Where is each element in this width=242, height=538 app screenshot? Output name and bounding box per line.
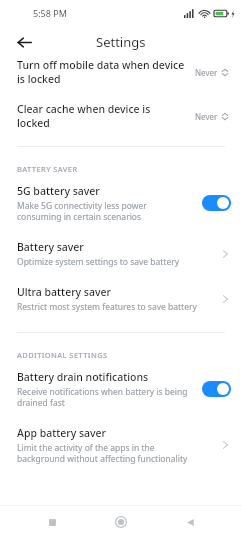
staticText: Limit the activity of the apps in the ba… (17, 442, 188, 464)
button[interactable]: Home (104, 506, 138, 538)
button[interactable]: Back (10, 28, 38, 56)
button[interactable]: Battery saver (0, 222, 242, 268)
staticText: BATTERY SAVER (17, 164, 78, 174)
button[interactable]: Battery drain notifications (0, 360, 242, 408)
staticText: Battery drain notifications (17, 370, 149, 384)
button[interactable]: Recents (35, 506, 69, 538)
button[interactable]: App battery saver (0, 408, 242, 464)
staticText: ADDITIONAL SETTINGS (17, 350, 108, 360)
button[interactable]: Turn off mobile data when device is lock… (0, 58, 242, 86)
staticText: Make 5G connectivity less power consumin… (17, 200, 147, 222)
staticText: Restrict most system features to save ba… (17, 301, 197, 313)
staticText: Battery saver (17, 240, 84, 254)
staticText: 5:58 PM (33, 7, 67, 19)
staticText: Never (195, 67, 218, 78)
staticText: Turn off mobile data when device is lock… (17, 58, 189, 86)
staticText: Never (195, 111, 218, 122)
staticText: Receive notifications when battery is be… (17, 386, 188, 408)
button[interactable]: Toggle 5G battery saver (202, 195, 231, 211)
staticText: App battery saver (17, 426, 107, 440)
staticText: Ultra battery saver (17, 285, 111, 299)
staticText: Clear cache when device is locked (17, 102, 189, 130)
button[interactable]: Back (173, 506, 207, 538)
button[interactable]: 5G battery saver (0, 174, 242, 222)
button[interactable]: Toggle Battery drain notifications (202, 381, 231, 397)
button[interactable]: Clear cache when device is locked (0, 86, 242, 130)
staticText: Optimize system settings to save battery (17, 256, 180, 268)
staticText: Settings (96, 33, 146, 51)
staticText: 5G battery saver (17, 184, 100, 198)
button[interactable]: Ultra battery saver (0, 268, 242, 313)
